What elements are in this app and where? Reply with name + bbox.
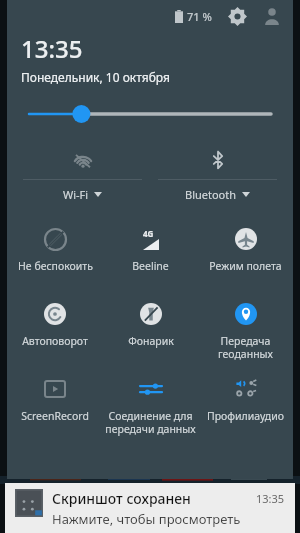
button[interactable]: Режим полета <box>198 216 293 291</box>
button[interactable]: Settings <box>226 5 248 27</box>
button[interactable]: 4G <box>103 216 198 291</box>
staticText: 71 % <box>187 9 212 24</box>
staticText: Фонарик <box>128 334 174 348</box>
button[interactable]: ScreenRecord <box>7 366 103 444</box>
staticText: Нажмите, чтобы просмотреть <box>52 510 241 528</box>
button[interactable]: Wi-Fi <box>23 145 142 202</box>
button[interactable]: Профилиаудио <box>198 366 293 444</box>
staticText: Bluetooth <box>185 187 237 202</box>
staticText: Wi-Fi <box>63 187 89 202</box>
staticText: Автоповорот <box>22 334 88 348</box>
staticText: Понедельник, 10 октября <box>21 69 170 85</box>
button[interactable]: User <box>261 5 283 27</box>
button[interactable]: Скриншот сохранен <box>5 483 295 533</box>
staticText: 13:35 <box>256 491 285 506</box>
staticText: Скриншот сохранен <box>52 489 191 508</box>
staticText: Beeline <box>132 259 169 273</box>
staticText: Режим полета <box>209 259 282 273</box>
staticText: 4G <box>143 228 154 239</box>
button[interactable]: Соединение для передачи данных <box>103 366 198 444</box>
staticText: Профилиаудио <box>207 409 284 423</box>
button[interactable]: Brightness <box>29 97 271 131</box>
button[interactable]: Передача геоданных <box>198 291 293 366</box>
staticText: Не беспокоить <box>18 259 93 273</box>
staticText: 13:35 <box>21 32 83 65</box>
button[interactable]: Не беспокоить <box>7 216 103 291</box>
staticText: Соединение для передачи данных <box>105 409 196 436</box>
button[interactable]: Bluetooth <box>158 145 277 202</box>
staticText: ScreenRecord <box>21 409 89 423</box>
button[interactable]: Автоповорот <box>7 291 103 366</box>
staticText: Передача геоданных <box>218 334 273 361</box>
button[interactable]: Фонарик <box>103 291 198 366</box>
